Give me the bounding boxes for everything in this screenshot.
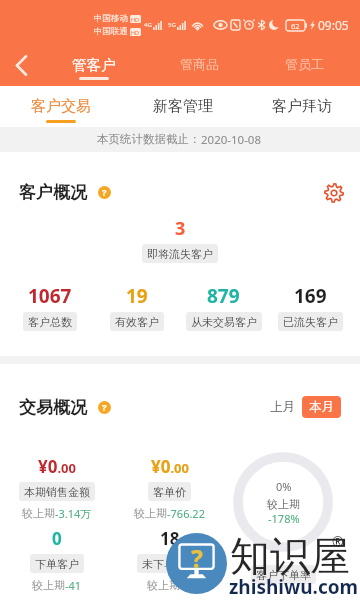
staticText: 客户概况 <box>19 182 87 203</box>
button[interactable]: 上月 <box>265 396 300 418</box>
button[interactable]: 本月 <box>302 396 341 418</box>
staticText: 19 <box>126 283 148 309</box>
staticText: -41 <box>65 578 82 593</box>
staticText: 从未交易客户 <box>191 315 257 329</box>
staticText: 管商品 <box>180 56 219 72</box>
staticText: 较上期 <box>32 578 65 592</box>
staticText: 较上期 <box>147 578 180 592</box>
staticText: 0% <box>276 479 292 494</box>
button[interactable]: Help <box>98 186 111 199</box>
staticText: 客户下单率 <box>256 568 311 582</box>
staticText: ¥0.00 <box>38 455 76 478</box>
button[interactable]: 管员工 <box>271 45 337 86</box>
staticText: 较上期 <box>267 497 300 511</box>
staticText: 管员工 <box>285 56 324 72</box>
staticText: ? <box>191 541 203 575</box>
button[interactable]: Settings <box>324 183 344 203</box>
staticText: 已流失客户 <box>283 315 338 329</box>
staticText: 知识屋 <box>230 531 350 581</box>
staticText: 2020-10-08 <box>201 132 262 148</box>
staticText: 62 <box>291 21 300 31</box>
staticText: ¥0.00 <box>151 455 189 478</box>
staticText: 0 <box>52 527 62 550</box>
staticText: ® <box>332 532 344 551</box>
staticText: -178% <box>268 511 300 526</box>
staticText: 较上期 <box>22 506 55 520</box>
staticText: ? <box>102 186 107 199</box>
staticText: 客户交易 <box>31 97 91 116</box>
staticText: zhishiwu.com <box>229 574 359 600</box>
staticText: 客单价 <box>153 485 186 499</box>
button[interactable]: Back <box>0 45 42 86</box>
button[interactable]: 客户交易 <box>11 86 111 127</box>
button[interactable]: 客户拜访 <box>252 86 352 127</box>
staticText: 本期销售金额 <box>24 485 90 499</box>
staticText: 中国移动 <box>94 13 128 24</box>
staticText: 879 <box>207 283 240 309</box>
staticText: ? <box>102 401 107 414</box>
staticText: 本月 <box>309 399 334 415</box>
button[interactable]: 管客户 <box>61 45 127 86</box>
button[interactable]: Help <box>98 401 111 414</box>
staticText: -766.22 <box>167 506 205 521</box>
staticText: 较上期 <box>134 506 167 520</box>
staticText: 未下单客户 <box>142 557 197 571</box>
staticText: +5 <box>180 578 193 593</box>
staticText: 169 <box>294 283 327 309</box>
staticText: 18 <box>160 527 180 550</box>
staticText: 09:05 <box>318 17 349 33</box>
staticText: 本页统计数据截止： <box>97 132 201 146</box>
staticText: 中国联通 <box>94 26 128 37</box>
staticText: 即将流失客户 <box>147 247 213 261</box>
staticText: 下单客户 <box>35 557 79 571</box>
staticText: -3.14万 <box>55 506 92 521</box>
staticText: 1067 <box>28 283 72 309</box>
staticText: 5G <box>168 21 176 29</box>
staticText: 3 <box>175 216 186 241</box>
staticText: 4G <box>144 21 152 29</box>
staticText: 管客户 <box>72 56 116 74</box>
staticText: 上月 <box>270 399 295 415</box>
button[interactable]: 新客管理 <box>133 86 233 127</box>
staticText: 有效客户 <box>115 315 159 329</box>
staticText: 交易概况 <box>19 397 87 418</box>
staticText: 客户总数 <box>28 315 72 329</box>
staticText: 新客管理 <box>153 97 213 116</box>
button[interactable]: 管商品 <box>166 45 232 86</box>
staticText: HD <box>131 29 140 36</box>
staticText: HD <box>131 16 140 23</box>
staticText: 客户拜访 <box>272 97 332 116</box>
